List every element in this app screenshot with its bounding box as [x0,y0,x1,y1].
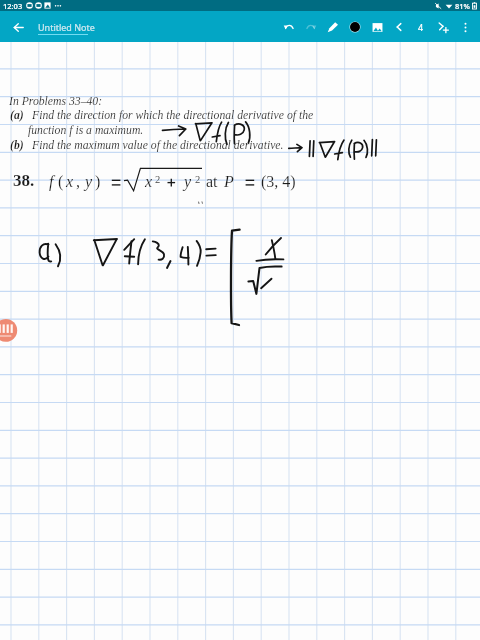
staticText: , [76,173,80,191]
staticText: Find the maximum value of the directiona… [32,139,284,152]
staticText: y [85,173,93,191]
staticText: x [145,173,153,191]
staticText: function f is a maximum. [28,124,144,137]
button[interactable]: Untitled Note [38,21,95,35]
button[interactable]: Redo [300,14,322,40]
staticText: 4 [418,21,424,33]
button[interactable]: Undo [278,14,300,40]
staticText: y [184,173,192,191]
staticText: (3, 4) [261,173,296,191]
staticText: 12:03 [3,1,23,11]
staticText: P [224,173,234,191]
staticText: (a) [10,109,24,122]
staticText: In Problems 33–40: [9,95,103,108]
staticText: at [206,173,218,191]
staticText: Find the direction for which the directi… [32,109,314,122]
staticText: 2 [195,174,201,186]
button[interactable]: 4 [410,14,432,40]
button[interactable]: Add page [432,14,454,40]
staticText: f [49,173,54,191]
button[interactable]: Pen [322,14,344,40]
button[interactable]: Insert image [366,14,388,40]
staticText: (b) [10,139,24,152]
staticText: 81% [455,1,470,11]
button[interactable]: Back [8,17,28,37]
button[interactable]: More options [454,14,476,40]
staticText: 38. [13,171,35,190]
staticText: ) [95,173,101,191]
staticText: x [66,173,74,191]
staticText: 2 [155,174,161,186]
staticText: ( [58,173,64,191]
button[interactable]: Pen colour [344,14,366,40]
staticText: Untitled Note [38,21,95,33]
button[interactable]: Previous page [388,14,410,40]
